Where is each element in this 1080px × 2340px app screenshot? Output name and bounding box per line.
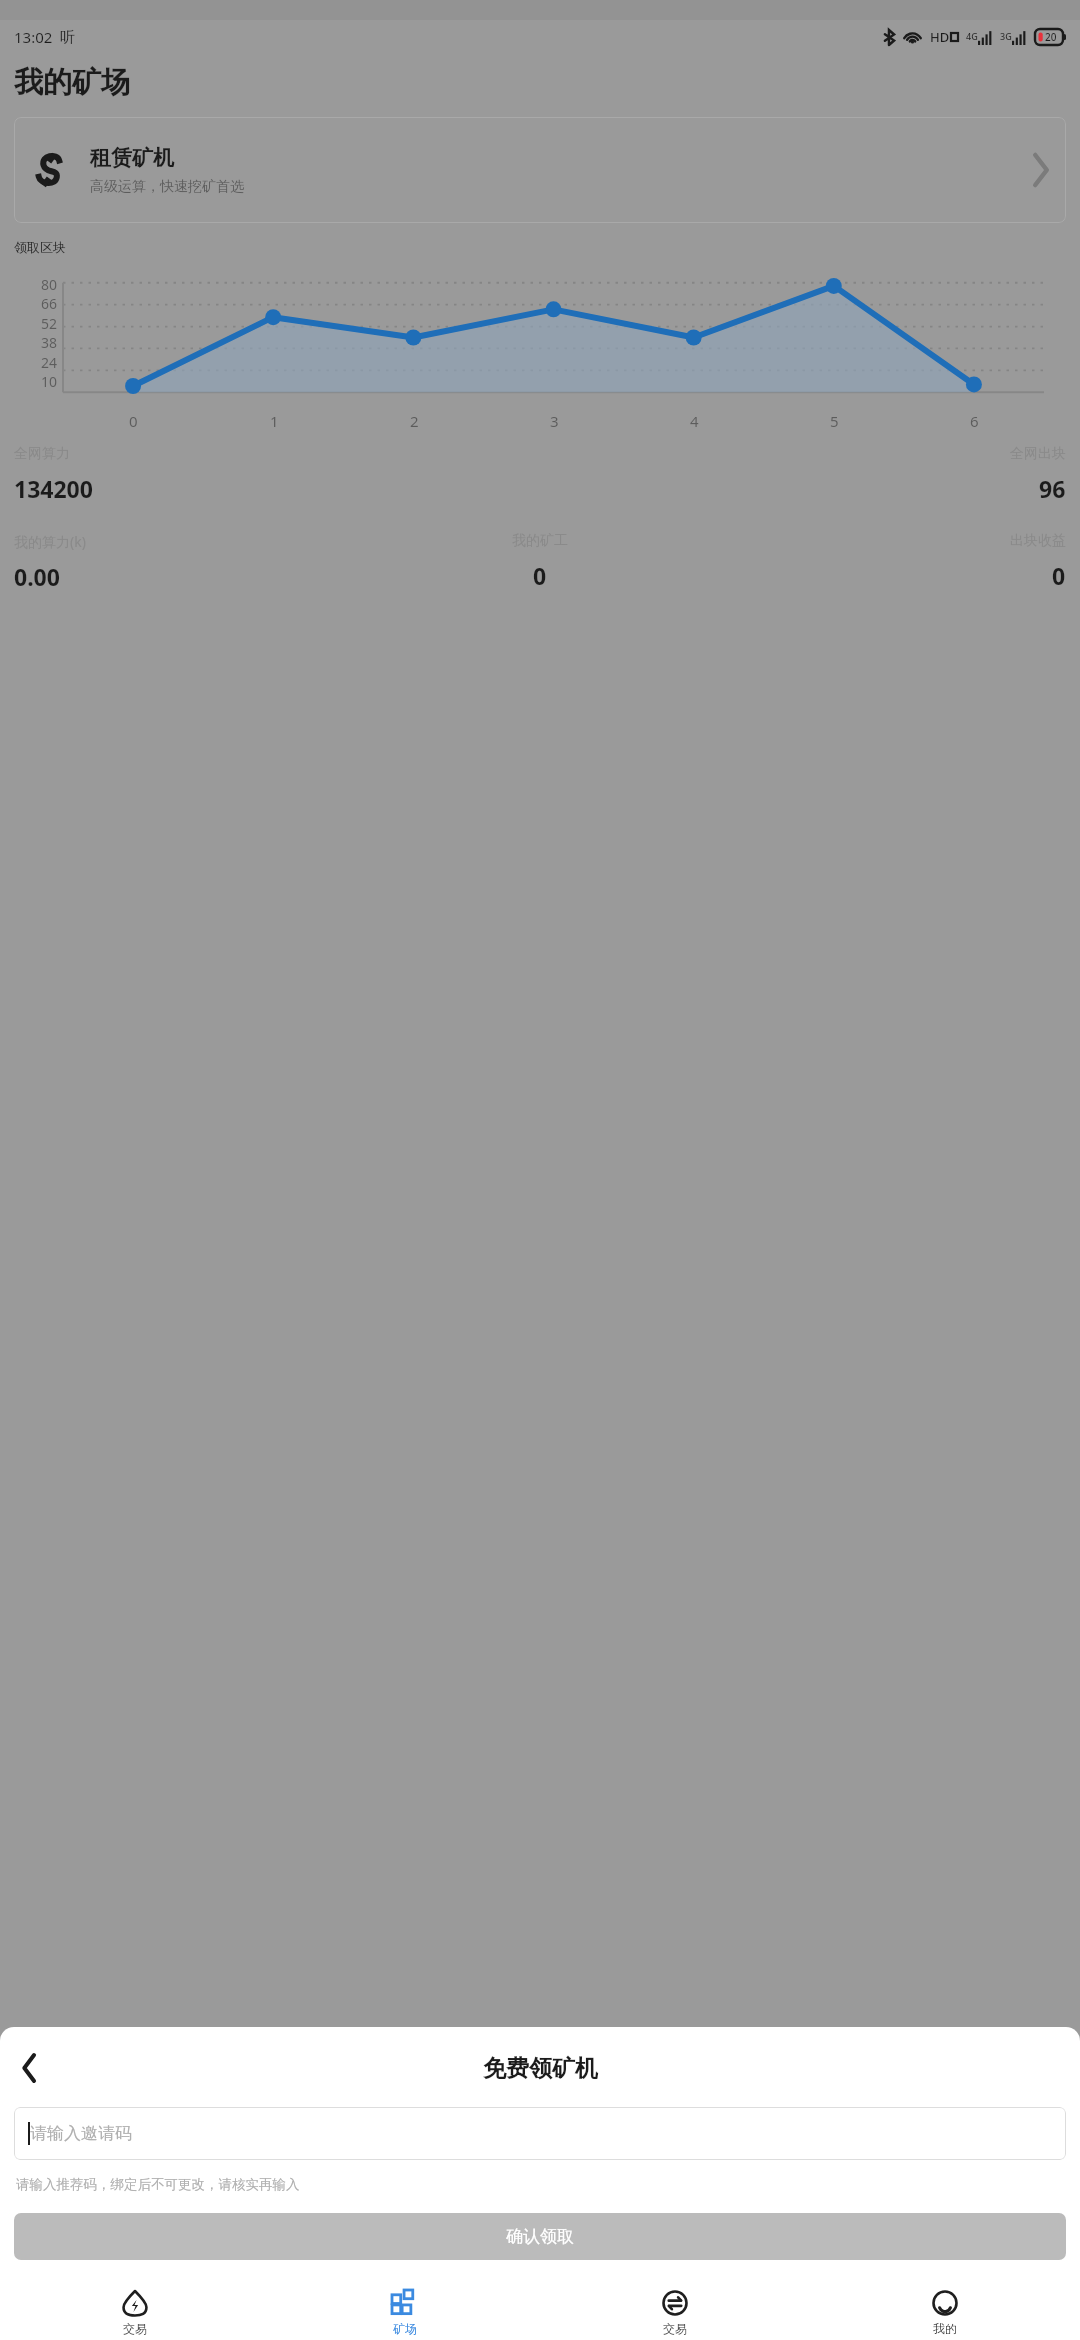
staticText: 1 <box>270 411 279 431</box>
staticText: 高级运算，快速挖矿首选 <box>90 178 244 196</box>
staticText: 全网出块 <box>1010 445 1066 463</box>
button[interactable]: 矿场 <box>270 2285 540 2340</box>
staticText: 52 <box>41 314 58 333</box>
button[interactable]: 租赁矿机 <box>14 117 1066 223</box>
staticText: 出块收益 <box>1010 532 1066 550</box>
staticText: 3 <box>550 411 559 431</box>
button[interactable]: 交易 <box>540 2285 810 2340</box>
staticText: 全网算力 <box>14 445 70 463</box>
staticText: 领取区块 <box>14 239 66 255</box>
staticText: 0.00 <box>14 561 60 592</box>
staticText: 0 <box>129 411 138 431</box>
staticText: 24 <box>41 353 58 372</box>
staticText: 租赁矿机 <box>90 145 174 171</box>
staticText: 4G <box>966 30 978 42</box>
staticText: HD <box>930 28 950 46</box>
staticText: 请输入推荐码，绑定后不可更改，请核实再输入 <box>16 2176 300 2193</box>
staticText: 5 <box>830 411 839 431</box>
staticText: 80 <box>41 275 58 294</box>
staticText: 38 <box>41 333 58 352</box>
staticText: 2 <box>410 411 419 431</box>
staticText: 20 <box>1045 30 1057 44</box>
staticText: 3G <box>1000 30 1012 42</box>
staticText: 确认领取 <box>506 2226 574 2247</box>
staticText: 免费领矿机 <box>483 2054 598 2083</box>
staticText: 0 <box>1052 560 1066 591</box>
staticText: 96 <box>1039 473 1066 504</box>
staticText: 0 <box>533 560 547 591</box>
staticText: 交易 <box>123 2321 147 2336</box>
button[interactable]: 交易 <box>0 2285 270 2340</box>
staticText: 我的矿场 <box>14 64 130 101</box>
staticText: 请输入邀请码 <box>30 2123 132 2144</box>
staticText: 10 <box>41 372 58 391</box>
button[interactable]: 请输入邀请码 <box>14 2107 1066 2160</box>
staticText: 66 <box>41 294 58 313</box>
staticText: 4 <box>690 411 699 431</box>
button[interactable]: 返回 <box>4 2043 54 2093</box>
button[interactable]: 确认领取 <box>14 2213 1066 2260</box>
staticText: 我的矿工 <box>512 532 568 550</box>
staticText: 矿场 <box>393 2321 417 2336</box>
staticText: 交易 <box>663 2321 687 2336</box>
staticText: 我的 <box>933 2321 957 2336</box>
staticText: 听 <box>60 28 75 47</box>
staticText: 134200 <box>14 473 93 504</box>
staticText: 13:02 <box>14 27 53 47</box>
button[interactable]: 我的 <box>810 2285 1080 2340</box>
staticText: 我的算力(k) <box>14 532 86 551</box>
staticText: 6 <box>970 411 979 431</box>
